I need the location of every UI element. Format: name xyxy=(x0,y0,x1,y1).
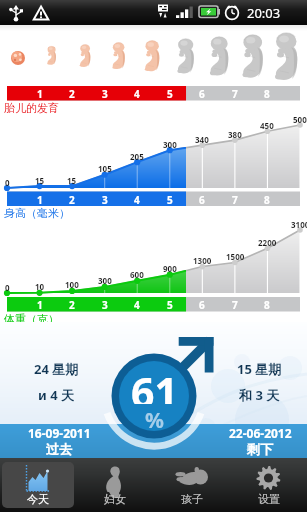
staticText: 16-09-2011 xyxy=(28,425,91,441)
staticText: 4 xyxy=(134,87,140,101)
staticText: 孩子 xyxy=(181,492,203,506)
staticText: 3 xyxy=(102,87,108,101)
staticText: 8 xyxy=(264,298,270,312)
staticText: 500 xyxy=(293,114,307,125)
staticText: 和 3 天 xyxy=(239,386,280,402)
staticText: 380 xyxy=(228,129,242,140)
staticText: 340 xyxy=(195,134,209,145)
staticText: 900 xyxy=(163,263,177,274)
staticText: 5 xyxy=(167,298,173,312)
staticText: 2 xyxy=(69,298,75,312)
staticText: 24 星期 xyxy=(34,360,79,376)
staticText: 10 xyxy=(35,281,45,292)
staticText: 4 xyxy=(134,298,140,312)
staticText: 600 xyxy=(130,269,144,280)
staticText: 设置 xyxy=(258,492,280,506)
staticText: 105 xyxy=(98,163,112,174)
staticText: 8 xyxy=(264,87,270,101)
staticText: 妇女 xyxy=(104,492,126,506)
staticText: 2 xyxy=(69,193,75,207)
staticText: 300 xyxy=(163,139,177,150)
staticText: 2200 xyxy=(258,237,277,248)
button[interactable]: Settings xyxy=(232,462,305,508)
staticText: 100 xyxy=(65,279,79,290)
staticText: 3 xyxy=(102,193,108,207)
staticText: 20:03 xyxy=(247,4,281,22)
staticText: 22-06-2012 xyxy=(229,425,292,441)
staticText: 剩下 xyxy=(247,441,273,457)
staticText: 身高（毫米） xyxy=(4,206,70,220)
staticText: 1500 xyxy=(226,251,245,262)
staticText: % xyxy=(145,406,164,428)
staticText: 7 xyxy=(232,298,238,312)
staticText: 4 xyxy=(134,193,140,207)
staticText: 5 xyxy=(167,87,173,101)
staticText: 15 xyxy=(67,175,77,186)
staticText: 6 xyxy=(199,87,205,101)
staticText: 300 xyxy=(98,275,112,286)
staticText: 1300 xyxy=(193,255,212,266)
staticText: 5 xyxy=(167,193,173,207)
staticText: 6 xyxy=(199,298,205,312)
staticText: 205 xyxy=(130,151,144,162)
staticText: 15 星期 xyxy=(237,360,282,376)
button[interactable]: Woman xyxy=(78,462,151,508)
button[interactable]: Child xyxy=(155,462,228,508)
staticText: 61 xyxy=(131,364,178,404)
staticText: 3 xyxy=(102,298,108,312)
staticText: 7 xyxy=(232,193,238,207)
staticText: 今天 xyxy=(27,492,49,506)
staticText: 15 xyxy=(35,175,45,186)
staticText: 2 xyxy=(69,87,75,101)
staticText: 0 xyxy=(5,282,10,293)
staticText: 1 xyxy=(37,298,43,312)
staticText: 8 xyxy=(264,193,270,207)
staticText: 3100 xyxy=(291,219,307,230)
staticText: 1 xyxy=(37,193,43,207)
staticText: 450 xyxy=(260,120,274,131)
staticText: 7 xyxy=(232,87,238,101)
staticText: 体重（克） xyxy=(4,312,59,326)
staticText: 6 xyxy=(199,193,205,207)
button[interactable]: Today xyxy=(2,462,74,508)
staticText: 0 xyxy=(5,177,10,188)
staticText: 1 xyxy=(37,87,43,101)
staticText: и 4 天 xyxy=(38,386,74,402)
staticText: 胎儿的发育 xyxy=(4,101,59,115)
staticText: 过去 xyxy=(46,441,72,457)
